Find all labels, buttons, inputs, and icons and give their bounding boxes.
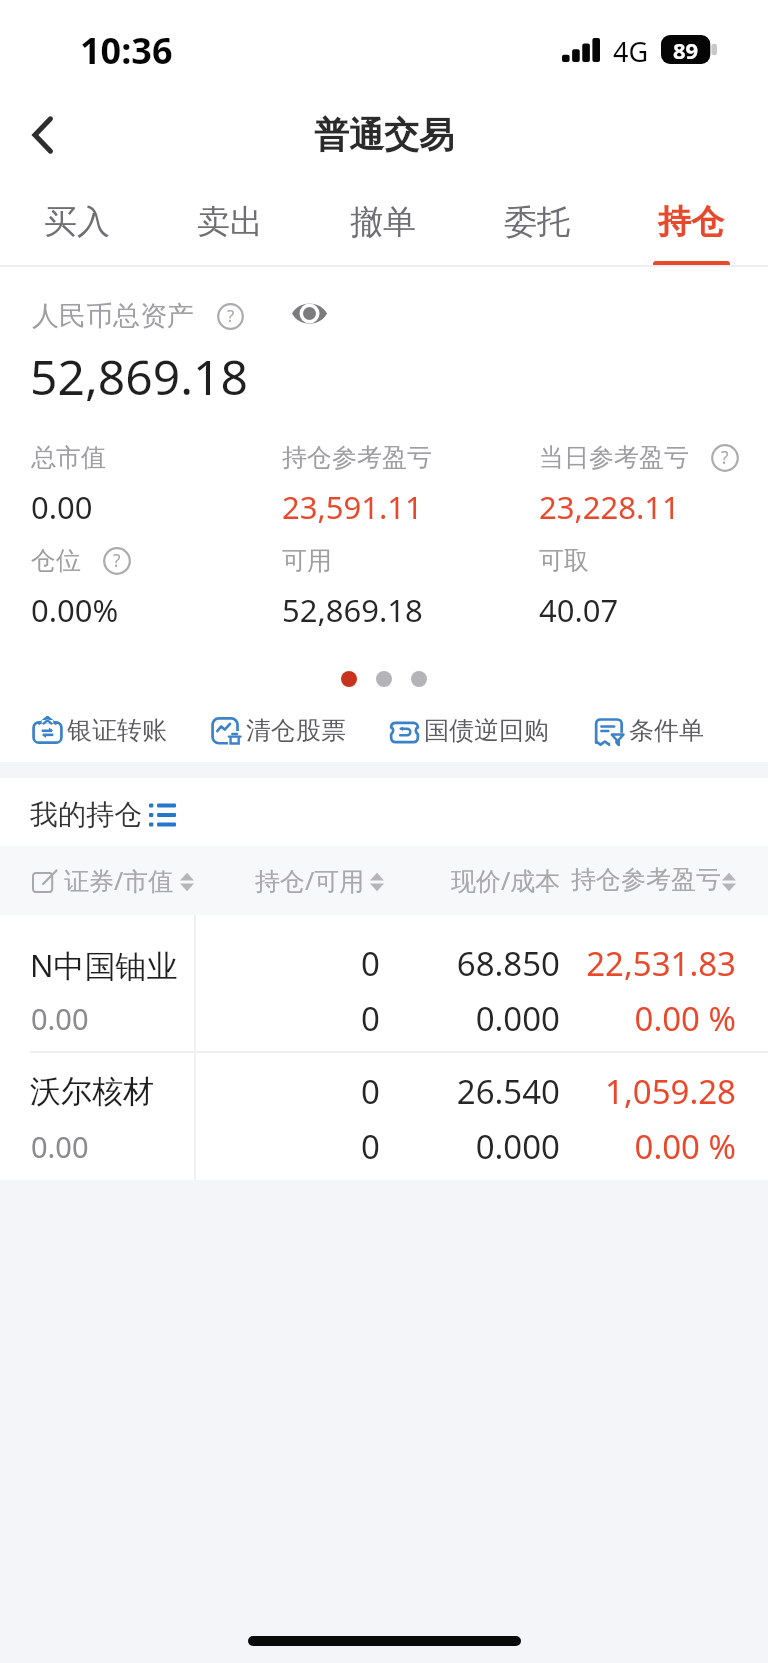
- staticText: 清仓股票: [246, 715, 346, 746]
- button[interactable]: 委托: [460, 178, 614, 267]
- button[interactable]: 清仓股票: [212, 710, 346, 750]
- staticText: 持仓/可用: [255, 863, 365, 897]
- staticText: 普通交易: [314, 113, 454, 157]
- staticText: 0.000: [260, 996, 560, 1041]
- staticText: 条件单: [629, 715, 704, 746]
- staticText: 0: [80, 1124, 380, 1169]
- button[interactable]: 卖出: [153, 178, 306, 267]
- button[interactable]: Help: [103, 547, 131, 575]
- button[interactable]: 现价/成本: [444, 846, 568, 915]
- staticText: 卖出: [197, 201, 263, 243]
- button[interactable]: 国债逆回购: [390, 710, 549, 750]
- staticText: 0.000: [260, 1124, 560, 1169]
- staticText: 撤单: [350, 201, 416, 243]
- staticText: 沃尔核材: [30, 1072, 154, 1111]
- staticText: 0: [80, 941, 380, 986]
- staticText: 0.00: [31, 999, 89, 1038]
- staticText: 现价/成本: [451, 863, 561, 897]
- button[interactable]: N中国铀业: [0, 915, 768, 1051]
- staticText: 23,228.11: [539, 486, 680, 528]
- staticText: 0: [80, 1069, 380, 1114]
- button[interactable]: Help: [217, 303, 244, 330]
- staticText: 当日参考盈亏: [539, 442, 689, 473]
- button[interactable]: Back: [13, 106, 71, 164]
- staticText: 52,869.18: [282, 589, 423, 631]
- staticText: 4G: [613, 33, 649, 70]
- staticText: 0.00 %: [436, 1124, 736, 1169]
- staticText: 持仓参考盈亏: [571, 864, 721, 895]
- button[interactable]: 持仓: [614, 178, 768, 267]
- staticText: 委托: [504, 201, 570, 243]
- staticText: 10:36: [80, 26, 173, 75]
- staticText: 0.00%: [31, 589, 119, 631]
- staticText: 1,059.28: [436, 1069, 736, 1114]
- button[interactable]: Help: [711, 444, 739, 472]
- staticText: 买入: [44, 201, 110, 243]
- staticText: 人民币总资产: [32, 299, 194, 333]
- staticText: 0.00: [31, 486, 93, 528]
- staticText: 89: [673, 35, 699, 64]
- button[interactable]: 银证转账: [33, 710, 167, 750]
- staticText: 我的持仓: [30, 797, 142, 832]
- button[interactable]: 持仓/可用: [248, 846, 390, 915]
- button[interactable]: 持仓参考盈亏: [566, 846, 746, 915]
- staticText: 银证转账: [67, 715, 167, 746]
- button[interactable]: 沃尔核材: [0, 1053, 768, 1180]
- button[interactable]: 条件单: [595, 710, 704, 750]
- staticText: 22,531.83: [436, 941, 736, 986]
- staticText: 持仓参考盈亏: [282, 442, 432, 473]
- staticText: 可用: [282, 545, 332, 576]
- staticText: 证券/市值: [64, 863, 174, 897]
- staticText: 0.00: [31, 1127, 89, 1166]
- staticText: 40.07: [539, 589, 619, 631]
- staticText: ?: [113, 548, 121, 572]
- button[interactable]: Page 3: [411, 671, 427, 687]
- button[interactable]: Toggle balance visibility: [288, 294, 330, 332]
- button[interactable]: Holdings list options: [146, 797, 178, 829]
- button[interactable]: 买入: [0, 178, 153, 267]
- staticText: N中国铀业: [30, 944, 178, 986]
- staticText: 总市值: [31, 442, 106, 473]
- staticText: 68.850: [260, 941, 560, 986]
- staticText: 23,591.11: [282, 486, 423, 528]
- staticText: 可取: [539, 545, 589, 576]
- staticText: 26.540: [260, 1069, 560, 1114]
- staticText: 仓位: [31, 545, 81, 576]
- staticText: 持仓: [658, 201, 724, 243]
- button[interactable]: 证券/市值: [26, 846, 198, 915]
- staticText: ?: [721, 445, 729, 469]
- staticText: 国债逆回购: [424, 715, 549, 746]
- staticText: 0: [80, 996, 380, 1041]
- button[interactable]: Page 1: [341, 671, 357, 687]
- staticText: 0.00 %: [436, 996, 736, 1041]
- button[interactable]: 撤单: [306, 178, 460, 267]
- staticText: 52,869.18: [30, 344, 248, 409]
- staticText: ?: [227, 304, 235, 327]
- button[interactable]: Page 2: [376, 671, 392, 687]
